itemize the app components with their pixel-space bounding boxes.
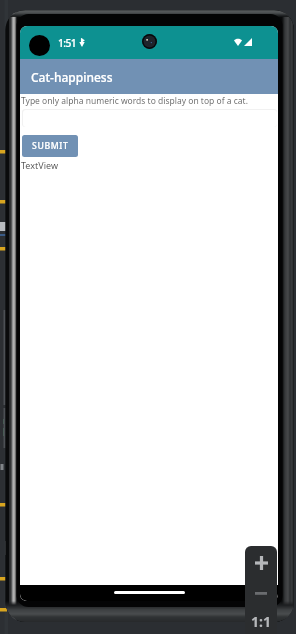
button[interactable] — [22, 109, 277, 127]
staticText: 1:1 — [251, 612, 271, 631]
button[interactable]: Zoom in — [245, 549, 277, 577]
button[interactable]: 1:1 — [245, 606, 277, 634]
staticText: Type only alpha numeric words to display… — [21, 95, 248, 107]
staticText: SUBMIT — [32, 140, 69, 152]
button[interactable]: SUBMIT — [22, 135, 78, 157]
staticText: TextView — [21, 159, 58, 171]
button[interactable]: Cat-happiness — [20, 59, 278, 94]
button[interactable]: Zoom out — [245, 579, 277, 607]
staticText: 1:51 — [58, 36, 77, 50]
staticText: Cat-happiness — [31, 69, 113, 85]
